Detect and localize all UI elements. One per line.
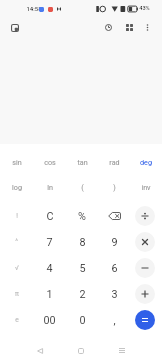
- staticText: 14:58: [26, 5, 42, 12]
- button[interactable]: ): [98, 174, 130, 199]
- staticText: e: [15, 316, 19, 324]
- staticText: inv: [141, 183, 151, 191]
- button[interactable]: 1: [33, 281, 66, 307]
- button[interactable]: Equals: [135, 310, 155, 330]
- staticText: 0: [79, 314, 86, 327]
- button[interactable]: Recents: [108, 340, 136, 360]
- staticText: %: [78, 210, 86, 223]
- staticText: tan: [77, 158, 88, 166]
- button[interactable]: ,: [98, 307, 130, 333]
- staticText: ,: [113, 314, 116, 327]
- button[interactable]: Home: [67, 340, 95, 360]
- button[interactable]: (: [66, 174, 98, 199]
- staticText: ^: [15, 238, 18, 246]
- button[interactable]: 3: [98, 281, 130, 307]
- staticText: 3: [111, 288, 118, 301]
- button[interactable]: tan: [66, 149, 98, 174]
- staticText: !: [16, 212, 18, 220]
- staticText: sin: [12, 158, 22, 166]
- staticText: 5: [79, 262, 86, 275]
- button[interactable]: 0: [66, 307, 98, 333]
- staticText: 6: [111, 262, 118, 275]
- staticText: 00: [43, 314, 56, 327]
- button[interactable]: Subtract: [135, 258, 155, 278]
- staticText: 1: [46, 288, 53, 301]
- staticText: 2: [79, 288, 86, 301]
- button[interactable]: log: [0, 174, 33, 199]
- staticText: deg: [140, 158, 152, 166]
- button[interactable]: 5: [66, 255, 98, 281]
- button[interactable]: Floating window: [2, 18, 28, 37]
- button[interactable]: 2: [66, 281, 98, 307]
- button[interactable]: Unit converter: [119, 18, 140, 37]
- button[interactable]: sin: [0, 149, 33, 174]
- button[interactable]: ^: [0, 229, 33, 255]
- staticText: √: [15, 264, 19, 272]
- button[interactable]: rad: [98, 149, 130, 174]
- button[interactable]: 9: [98, 229, 130, 255]
- staticText: C: [46, 210, 54, 223]
- button[interactable]: cos: [33, 149, 66, 174]
- button[interactable]: 6: [98, 255, 130, 281]
- staticText: 7: [46, 236, 53, 249]
- staticText: log: [12, 183, 22, 191]
- button[interactable]: 4: [33, 255, 66, 281]
- button[interactable]: Backspace: [98, 203, 130, 229]
- staticText: 43%: [139, 5, 150, 12]
- staticText: 9: [111, 236, 118, 249]
- button[interactable]: 8: [66, 229, 98, 255]
- button[interactable]: 7: [33, 229, 66, 255]
- button[interactable]: Divide: [135, 206, 155, 226]
- button[interactable]: √: [0, 255, 33, 281]
- button[interactable]: More options: [138, 18, 157, 37]
- button[interactable]: Multiply: [135, 232, 155, 252]
- button[interactable]: C: [33, 203, 66, 229]
- button[interactable]: %: [66, 203, 98, 229]
- staticText: ): [113, 183, 116, 191]
- staticText: π: [15, 290, 19, 298]
- button[interactable]: 00: [33, 307, 66, 333]
- button[interactable]: inv: [130, 174, 162, 199]
- staticText: cos: [44, 158, 56, 166]
- button[interactable]: Back: [26, 340, 54, 360]
- staticText: 8: [79, 236, 86, 249]
- staticText: 4: [46, 262, 53, 275]
- button[interactable]: ln: [33, 174, 66, 199]
- staticText: rad: [109, 158, 120, 166]
- button[interactable]: deg: [130, 149, 162, 174]
- button[interactable]: e: [0, 307, 33, 333]
- staticText: ln: [47, 183, 53, 191]
- button[interactable]: π: [0, 281, 33, 307]
- staticText: (: [81, 183, 84, 191]
- button[interactable]: Add: [135, 284, 155, 304]
- button[interactable]: History: [98, 18, 119, 37]
